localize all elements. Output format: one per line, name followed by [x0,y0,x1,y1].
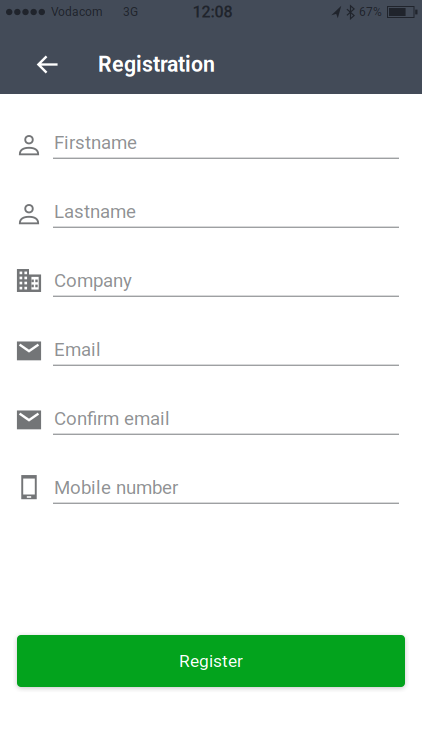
staticText: 67% [359,5,382,19]
button[interactable]: Confirm email [0,384,422,453]
staticText: Lastname [54,201,136,222]
button[interactable]: Company [0,246,422,315]
button[interactable]: Back [26,43,69,86]
staticText: 3G [123,5,138,19]
button[interactable]: Mobile number [0,453,422,522]
staticText: Registration [98,52,215,77]
button[interactable]: Email [0,315,422,384]
staticText: Mobile number [54,477,178,498]
staticText: 12:08 [192,3,232,21]
staticText: Register [179,651,243,671]
button[interactable]: Register [17,635,405,687]
staticText: Email [54,339,101,360]
staticText: Company [54,270,132,291]
staticText: Firstname [54,132,137,153]
staticText: Confirm email [54,408,170,429]
staticText: Vodacom [51,5,103,19]
button[interactable]: Lastname [0,177,422,246]
button[interactable]: Firstname [0,108,422,177]
